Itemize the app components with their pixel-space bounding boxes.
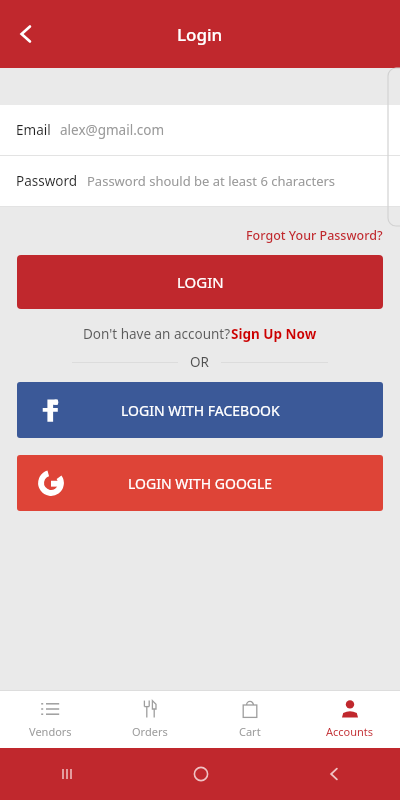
- staticText: LOGIN: [177, 272, 224, 292]
- staticText: Password should be at least 6 characters: [87, 172, 336, 190]
- button[interactable]: Orders: [100, 691, 200, 748]
- button[interactable]: LOGIN WITH GOOGLE: [17, 455, 383, 511]
- button[interactable]: Email: [0, 105, 400, 155]
- staticText: Email: [16, 121, 51, 139]
- button[interactable]: Home: [134, 748, 267, 800]
- button[interactable]: Vendors: [0, 691, 100, 748]
- button[interactable]: Recent apps: [0, 748, 134, 800]
- staticText: Login: [177, 23, 223, 46]
- button[interactable]: Forgot Your Password?: [229, 225, 400, 246]
- staticText: Accounts: [326, 724, 374, 739]
- staticText: alex@gmail.com: [60, 121, 165, 139]
- staticText: Password: [16, 172, 78, 190]
- button[interactable]: Back: [0, 8, 52, 60]
- staticText: Forgot Your Password?: [246, 227, 383, 244]
- button[interactable]: LOGIN: [17, 255, 383, 309]
- staticText: Don't have an account?: [83, 325, 231, 343]
- staticText: Vendors: [29, 724, 72, 739]
- button[interactable]: LOGIN WITH FACEBOOK: [17, 382, 383, 438]
- staticText: Orders: [132, 724, 168, 739]
- button[interactable]: Password: [0, 156, 400, 206]
- staticText: LOGIN WITH GOOGLE: [128, 474, 273, 493]
- staticText: LOGIN WITH FACEBOOK: [121, 401, 280, 420]
- button[interactable]: Back: [267, 748, 400, 800]
- staticText: Sign Up Now: [231, 325, 317, 343]
- button[interactable]: Sign Up Now: [231, 325, 317, 343]
- button[interactable]: Accounts: [300, 691, 400, 748]
- staticText: OR: [190, 353, 209, 371]
- button[interactable]: Cart: [200, 691, 300, 748]
- staticText: Cart: [239, 724, 261, 739]
